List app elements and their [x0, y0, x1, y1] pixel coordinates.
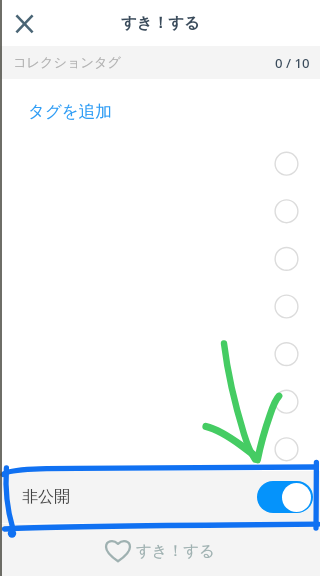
button[interactable]: Select tag slot: [275, 440, 298, 463]
button[interactable]: タグを追加: [0, 79, 112, 122]
button[interactable]: Select tag slot: [275, 392, 298, 415]
button[interactable]: Close: [8, 7, 40, 39]
button[interactable]: Private toggle, on: [257, 481, 313, 513]
staticText: すき！する: [136, 541, 215, 561]
button[interactable]: Select tag slot: [275, 152, 298, 175]
button[interactable]: すき！する: [105, 539, 215, 562]
button[interactable]: Select tag slot: [275, 296, 298, 319]
button[interactable]: Select tag slot: [275, 344, 298, 367]
staticText: 非公開: [22, 487, 70, 507]
button[interactable]: Select tag slot: [275, 200, 298, 223]
staticText: コレクションタグ: [13, 54, 121, 71]
button[interactable]: Select tag slot: [275, 248, 298, 271]
staticText: すき！する: [121, 13, 200, 33]
staticText: 0 / 10: [275, 54, 310, 72]
